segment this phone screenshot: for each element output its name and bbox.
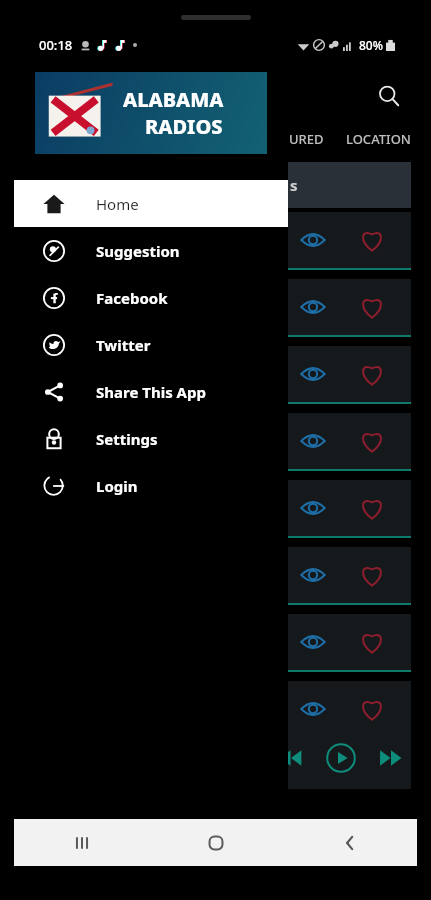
button[interactable]: Facebook — [14, 274, 288, 321]
staticText: Suggestion — [96, 241, 180, 261]
staticText: RADIOS — [145, 113, 223, 140]
button[interactable]: Home — [149, 819, 283, 866]
staticText: Share This App — [96, 382, 206, 402]
staticText: Login — [96, 476, 138, 496]
button[interactable]: Back — [283, 819, 417, 866]
button[interactable]: URED — [289, 130, 324, 148]
button[interactable]: Recents — [14, 819, 149, 866]
button[interactable] — [20, 346, 411, 404]
button[interactable]: Search — [369, 76, 409, 116]
staticText: s — [290, 175, 298, 195]
button[interactable] — [20, 413, 411, 471]
button[interactable] — [20, 547, 411, 605]
staticText: Settings — [96, 429, 158, 449]
button[interactable]: Twitter — [14, 321, 288, 368]
button[interactable]: Play — [319, 736, 363, 780]
staticText: URED — [289, 130, 324, 148]
button[interactable]: Login — [14, 462, 288, 509]
button[interactable]: Home — [14, 180, 288, 227]
staticText: Twitter — [96, 335, 151, 355]
button[interactable]: Share This App — [14, 368, 288, 415]
staticText: Facebook — [96, 288, 168, 308]
button[interactable]: s — [20, 162, 411, 208]
button[interactable] — [20, 681, 411, 739]
button[interactable] — [20, 614, 411, 672]
staticText: 80% — [359, 37, 383, 53]
button[interactable]: Suggestion — [14, 227, 288, 274]
button[interactable]: LOCATION — [346, 130, 411, 148]
staticText: ALABAMA — [123, 86, 224, 113]
staticText: Home — [96, 194, 139, 214]
button[interactable]: Settings — [14, 415, 288, 462]
staticText: LOCATION — [346, 130, 411, 148]
button[interactable] — [20, 212, 411, 270]
button[interactable]: Previous — [271, 738, 311, 778]
button[interactable]: ALABAMA — [35, 72, 267, 154]
staticText: 00:18 — [39, 36, 73, 54]
button[interactable] — [20, 279, 411, 337]
button[interactable] — [20, 480, 411, 538]
button[interactable]: Next — [371, 738, 411, 778]
